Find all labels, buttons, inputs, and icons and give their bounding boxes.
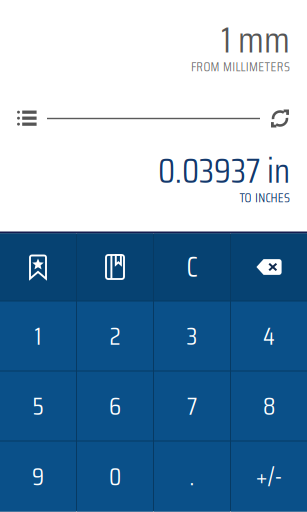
button[interactable]: .: [154, 441, 230, 511]
staticText: +/-: [255, 457, 282, 496]
button[interactable]: 0.03937 in: [17, 143, 290, 198]
staticText: FROM MILLIMETERS: [191, 56, 290, 77]
button[interactable]: 5: [0, 371, 76, 440]
button[interactable]: 8: [231, 371, 307, 440]
staticText: 2: [109, 316, 120, 356]
button[interactable]: 3: [154, 301, 230, 370]
staticText: 7: [187, 386, 197, 426]
staticText: TO INCHES: [239, 187, 290, 208]
staticText: 1: [34, 316, 41, 356]
button[interactable]: 7: [154, 371, 230, 440]
staticText: 0.03937 in: [158, 143, 290, 198]
staticText: 6: [109, 386, 121, 426]
button[interactable]: +/-: [231, 441, 307, 511]
staticText: C: [186, 245, 197, 289]
button[interactable]: C: [154, 233, 230, 300]
button[interactable]: Units list: [17, 110, 37, 126]
button[interactable]: 0: [77, 441, 153, 511]
button[interactable]: 1: [0, 301, 76, 370]
staticText: 9: [32, 457, 44, 496]
staticText: 8: [263, 386, 275, 426]
button[interactable]: Favorites: [0, 233, 76, 300]
button[interactable]: Delete: [231, 233, 307, 300]
button[interactable]: 9: [0, 441, 76, 511]
button[interactable]: 6: [77, 371, 153, 440]
button[interactable]: 1 mm: [17, 10, 290, 69]
button[interactable]: Swap units: [270, 108, 290, 128]
staticText: 5: [32, 386, 43, 426]
staticText: .: [189, 457, 194, 496]
staticText: 4: [263, 316, 275, 356]
button[interactable]: 2: [77, 301, 153, 370]
staticText: 3: [186, 316, 197, 356]
button[interactable]: 4: [231, 301, 307, 370]
button[interactable]: Reference: [77, 233, 153, 300]
staticText: 0: [109, 457, 121, 496]
staticText: 1 mm: [221, 10, 290, 69]
